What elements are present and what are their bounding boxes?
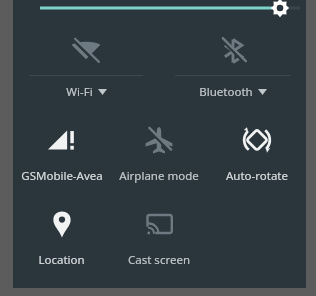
staticText: Location <box>38 252 85 268</box>
button[interactable]: Bluetooth <box>159 26 306 100</box>
button[interactable]: Cast screen <box>110 196 208 278</box>
staticText: Airplane mode <box>119 168 199 184</box>
staticText: Wi-Fi <box>66 84 93 100</box>
button[interactable]: GSMobile-Avea <box>13 112 110 194</box>
staticText: Bluetooth <box>199 84 253 100</box>
button[interactable]: Brightness <box>13 0 306 24</box>
staticText: Cast screen <box>128 252 190 268</box>
button[interactable]: Wi-Fi <box>13 26 159 100</box>
button[interactable]: Location <box>13 196 110 278</box>
staticText: GSMobile-Avea <box>21 168 103 184</box>
staticText: Auto-rotate <box>226 168 288 184</box>
button[interactable]: Auto-rotate <box>208 112 306 194</box>
button[interactable]: Airplane mode <box>110 112 208 194</box>
